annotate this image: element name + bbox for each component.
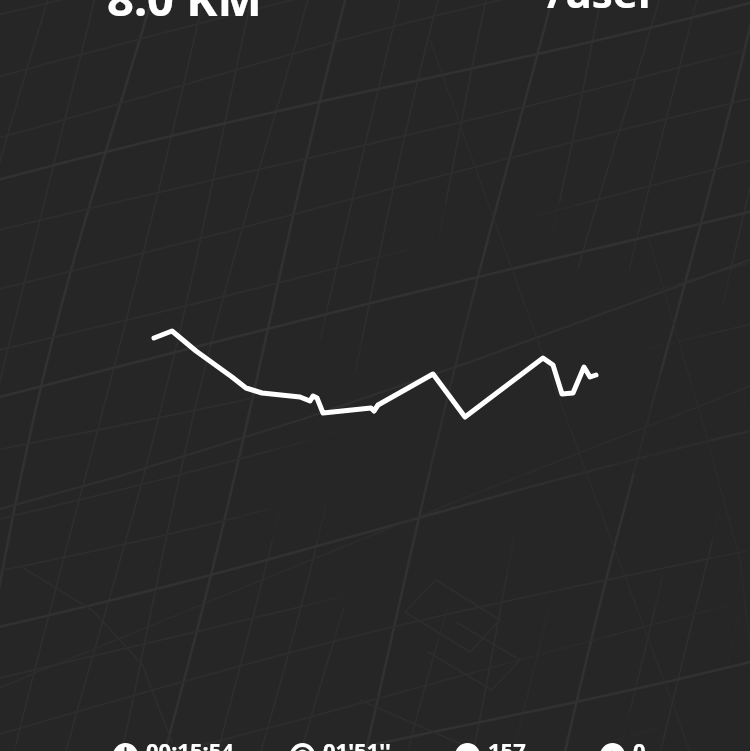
- staticText: 8.0 KM: [107, 0, 262, 30]
- staticText: 0: [633, 735, 646, 751]
- button[interactable]: Duration: [113, 740, 234, 751]
- staticText: /user: [547, 0, 657, 20]
- staticText: 157: [488, 735, 526, 751]
- button[interactable]: Pace: [290, 740, 391, 751]
- button[interactable]: Heart rate: [455, 740, 526, 751]
- staticText: 00:15:54: [146, 735, 234, 751]
- button[interactable]: Elevation: [600, 740, 646, 751]
- staticText: 01'51'': [323, 735, 391, 751]
